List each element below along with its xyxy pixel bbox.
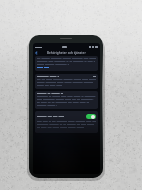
button[interactable]: Back <box>34 51 38 55</box>
staticText: Behörigheter och tjänster <box>47 51 86 55</box>
button[interactable] <box>35 56 98 71</box>
button[interactable] <box>35 91 98 109</box>
button[interactable]: Toggle personalised marketing <box>35 111 98 133</box>
button[interactable]: Toggle personalised marketing <box>86 114 96 119</box>
button[interactable] <box>35 74 98 89</box>
